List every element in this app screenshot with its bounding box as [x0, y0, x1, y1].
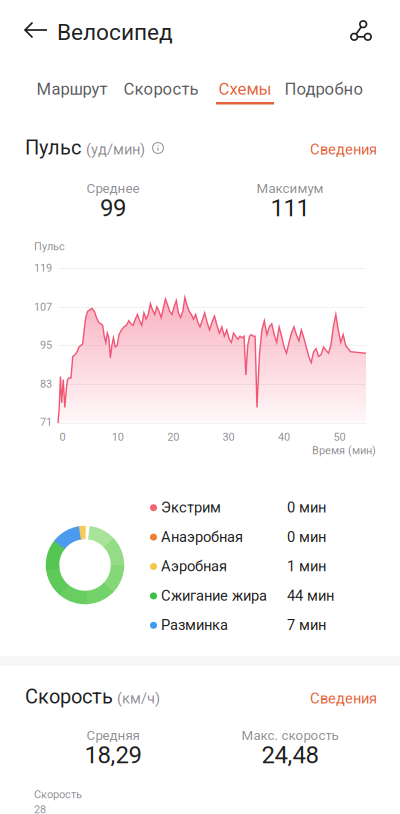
staticText: 119	[34, 262, 52, 274]
staticText: 28	[34, 803, 46, 814]
staticText: Пульс	[25, 136, 81, 159]
staticText: Маршрут	[36, 79, 107, 99]
staticText: Максимум	[256, 181, 323, 196]
staticText: 44 мин	[287, 587, 334, 604]
staticText: Время (мин)	[312, 444, 376, 457]
staticText: Анаэробная	[161, 528, 243, 545]
button[interactable]: Сведения	[302, 684, 385, 713]
staticText: Сведения	[310, 141, 377, 158]
staticText: 0	[59, 431, 65, 443]
staticText: 95	[40, 339, 52, 351]
staticText: 24,48	[261, 741, 318, 769]
staticText: 99	[100, 194, 126, 222]
staticText: 10	[112, 431, 124, 443]
button[interactable]: Back	[12, 8, 60, 52]
staticText: 71	[40, 416, 52, 428]
staticText: 50	[333, 431, 345, 443]
staticText: Скорость	[34, 788, 82, 801]
staticText: Схемы	[218, 79, 271, 99]
staticText: Среднее	[86, 181, 139, 196]
button[interactable]: Маршрут	[28, 81, 116, 121]
staticText: 83	[40, 378, 52, 390]
staticText: 0 мин	[287, 528, 326, 545]
staticText: Велосипед	[57, 19, 173, 46]
staticText: 1 мин	[287, 558, 326, 575]
staticText: 30	[223, 431, 235, 443]
staticText: 18,29	[84, 741, 141, 769]
staticText: Подробно	[284, 79, 363, 99]
staticText: Экстрим	[161, 499, 221, 516]
staticText: 111	[270, 194, 309, 222]
button[interactable]: Сведения	[302, 135, 385, 164]
staticText: (км/ч)	[117, 690, 160, 707]
staticText: 107	[34, 301, 52, 313]
staticText: Сжигание жира	[161, 587, 267, 604]
staticText: 0 мин	[287, 499, 326, 516]
button[interactable]: Подробно	[277, 81, 371, 121]
staticText: Скорость	[25, 685, 113, 708]
staticText: 40	[278, 431, 290, 443]
button[interactable]: Share	[337, 7, 385, 54]
staticText: Макс. скорость	[241, 728, 338, 743]
staticText: Средняя	[86, 728, 139, 743]
staticText: (уд/мин)	[86, 141, 145, 158]
staticText: Скорость	[123, 79, 198, 99]
staticText: Сведения	[310, 690, 377, 707]
button[interactable]: Схемы	[208, 81, 282, 121]
staticText: 7 мин	[287, 616, 326, 634]
staticText: 20	[167, 431, 179, 443]
staticText: Пульс	[34, 240, 65, 253]
staticText: Аэробная	[161, 558, 227, 575]
button[interactable]: Скорость	[116, 81, 206, 121]
staticText: Разминка	[161, 616, 228, 634]
